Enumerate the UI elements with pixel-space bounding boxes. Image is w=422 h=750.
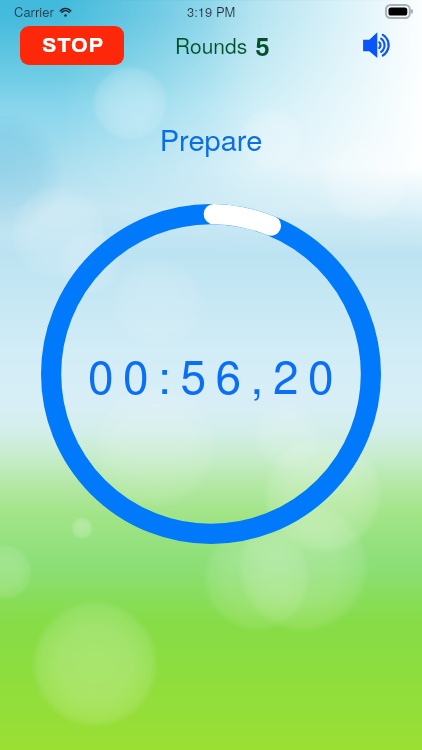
staticText: STOP xyxy=(42,34,104,57)
staticText: Carrier xyxy=(14,2,54,21)
staticText: Prepare xyxy=(0,118,422,160)
staticText: 00:56,20 xyxy=(88,341,344,407)
button[interactable]: Rounds xyxy=(175,30,270,64)
staticText: Rounds xyxy=(175,30,248,60)
staticText: 5 xyxy=(255,34,270,61)
button[interactable]: Sound on xyxy=(354,23,398,67)
staticText: 3:19 PM xyxy=(187,2,236,21)
button[interactable]: STOP xyxy=(20,26,124,65)
